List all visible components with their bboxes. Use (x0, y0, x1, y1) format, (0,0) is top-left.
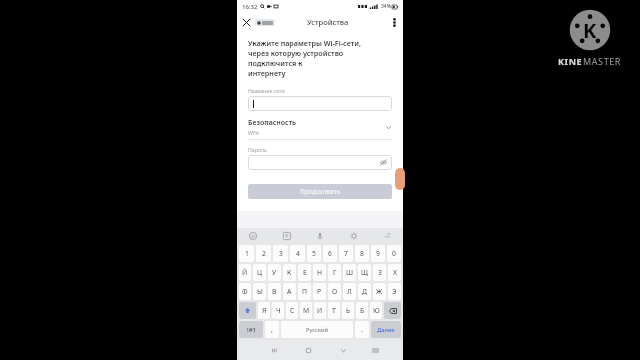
button[interactable]: 6 (323, 245, 337, 262)
button[interactable]: More options (385, 13, 403, 31)
staticText: 9 (376, 249, 380, 258)
staticText: KINE (558, 55, 583, 67)
staticText: Безопасность (248, 118, 297, 128)
staticText: Ю (373, 306, 380, 315)
button[interactable]: З (373, 264, 386, 281)
button[interactable]: Ж (373, 283, 386, 300)
staticText: 0 (392, 249, 396, 258)
button[interactable]: Х (388, 264, 401, 281)
button[interactable]: Д (358, 283, 371, 300)
staticText: 34% (381, 3, 391, 10)
button[interactable]: П (298, 283, 311, 300)
button[interactable]: В (268, 283, 281, 300)
button[interactable]: Switch keyboard (361, 340, 389, 360)
button[interactable]: Й (239, 264, 251, 281)
staticText: Н (317, 268, 323, 277)
button[interactable]: Close (237, 13, 255, 31)
button[interactable]: . (355, 321, 369, 338)
button[interactable]: !#1 (239, 321, 263, 338)
staticText: А (287, 287, 292, 296)
button[interactable]: М (300, 302, 312, 319)
button[interactable]: Ю (370, 302, 382, 319)
button[interactable]: Hide keyboard (326, 340, 361, 360)
staticText: З (378, 268, 382, 277)
button[interactable]: Ы (253, 283, 266, 300)
button[interactable]: Ч (272, 302, 284, 319)
staticText: Г (333, 268, 337, 277)
staticText: 1 (245, 249, 249, 258)
staticText: Продолжить (300, 187, 341, 196)
button[interactable]: 4 (290, 245, 305, 262)
button[interactable]: Shift (239, 302, 256, 319)
button[interactable]: 5 (307, 245, 321, 262)
button[interactable]: Show password (248, 155, 392, 170)
button[interactable] (248, 96, 392, 111)
button[interactable]: С (286, 302, 298, 319)
staticText: Устройства (307, 17, 349, 27)
staticText: Ш (346, 268, 354, 277)
button[interactable]: Voice input (314, 230, 326, 242)
staticText: Ф (242, 287, 248, 296)
button[interactable]: Ф (239, 283, 251, 300)
staticText: Ч (276, 306, 281, 315)
button[interactable]: Б (356, 302, 368, 319)
staticText: Название сети (248, 87, 285, 94)
button[interactable]: Безопасность (248, 118, 392, 136)
staticText: 2 (262, 249, 266, 258)
button[interactable]: 9 (371, 245, 385, 262)
staticText: Э (392, 287, 397, 296)
button[interactable]: Ш (343, 264, 356, 281)
button[interactable]: Keyboard settings (348, 230, 360, 242)
button[interactable]: More (381, 230, 393, 242)
button[interactable]: Р (313, 283, 326, 300)
button[interactable]: 7 (339, 245, 353, 262)
staticText: К (287, 268, 292, 277)
button[interactable]: И (314, 302, 326, 319)
button[interactable]: О (328, 283, 341, 300)
staticText: 3 (279, 249, 283, 258)
staticText: Пароль (248, 146, 267, 153)
button[interactable]: 1 (239, 245, 254, 262)
staticText: Ь (346, 306, 351, 315)
button[interactable]: Л (343, 283, 356, 300)
button[interactable]: Ь (342, 302, 354, 319)
staticText: K (583, 17, 597, 44)
button[interactable]: Т (328, 302, 340, 319)
staticText: 5 (312, 249, 316, 258)
button[interactable]: 8 (355, 245, 369, 262)
button[interactable]: А (283, 283, 296, 300)
button[interactable]: Русский (281, 321, 353, 338)
button[interactable]: Г (328, 264, 341, 281)
button[interactable]: 3 (273, 245, 288, 262)
button[interactable]: Н (313, 264, 326, 281)
button[interactable]: Recents (257, 340, 291, 360)
staticText: Й (242, 268, 248, 277)
staticText: 16:32 (242, 3, 258, 11)
button[interactable]: Е (298, 264, 311, 281)
button[interactable]: Ц (253, 264, 266, 281)
button[interactable]: Э (388, 283, 401, 300)
staticText: У (272, 268, 277, 277)
button[interactable]: Stickers (281, 230, 293, 242)
staticText: 7 (344, 249, 348, 258)
staticText: Я (262, 306, 267, 315)
button[interactable]: 0 (387, 245, 401, 262)
button[interactable]: , (265, 321, 279, 338)
button[interactable]: Я (258, 302, 270, 319)
button[interactable]: Emoji (247, 230, 259, 242)
staticText: Х (393, 268, 397, 277)
button[interactable]: Show password (379, 158, 388, 167)
button[interactable]: Щ (358, 264, 371, 281)
button[interactable]: У (268, 264, 281, 281)
staticText: М (303, 306, 310, 315)
staticText: Д (362, 287, 367, 296)
button[interactable]: 2 (256, 245, 271, 262)
button[interactable]: Backspace (384, 302, 401, 319)
staticText: MASTER (583, 55, 622, 67)
button[interactable]: Далее (371, 321, 401, 338)
button[interactable]: Home (291, 340, 326, 360)
staticText: !#1 (247, 326, 256, 334)
button[interactable]: К (283, 264, 296, 281)
button[interactable]: Продолжить (248, 184, 392, 199)
staticText: Р (317, 287, 322, 296)
